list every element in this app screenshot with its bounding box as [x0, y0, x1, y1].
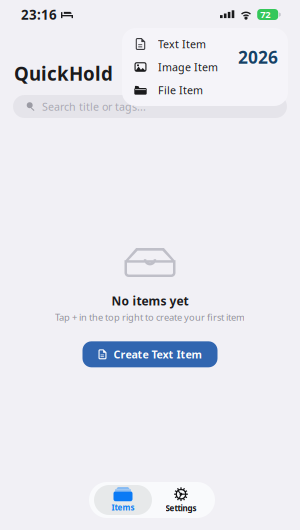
staticText: Create Text Item	[113, 347, 201, 361]
staticText: Tap + in the top right to create your fi…	[55, 311, 245, 323]
staticText: 2026	[237, 45, 277, 68]
staticText: Settings	[165, 503, 196, 513]
staticText: 2026	[237, 46, 277, 69]
staticText: 2026	[238, 45, 278, 68]
staticText: Search title or tags...	[42, 99, 146, 114]
staticText: 2026	[237, 45, 277, 68]
staticText: 72	[260, 8, 270, 21]
staticText: 23:16	[21, 6, 57, 23]
button[interactable]: QuickHold	[14, 61, 113, 86]
staticText: File Item	[158, 83, 203, 97]
staticText: 2026	[238, 45, 278, 68]
staticText: 2026	[238, 45, 278, 68]
button[interactable]: Create Text Item	[82, 341, 217, 367]
staticText: Text Item	[158, 37, 206, 51]
button[interactable]: Text Item	[122, 33, 288, 55]
staticText: QuickHold	[14, 61, 113, 86]
staticText: 2026	[239, 45, 279, 68]
button[interactable]: Settings	[152, 485, 210, 515]
button[interactable]: File Item	[122, 79, 288, 101]
staticText: 2026	[238, 46, 278, 69]
staticText: Items	[111, 502, 134, 513]
staticText: Image Item	[158, 60, 218, 74]
button[interactable]: Image Item	[122, 56, 288, 78]
staticText: 2026	[238, 46, 278, 69]
button[interactable]: Items	[94, 485, 152, 515]
staticText: No items yet	[111, 293, 188, 309]
